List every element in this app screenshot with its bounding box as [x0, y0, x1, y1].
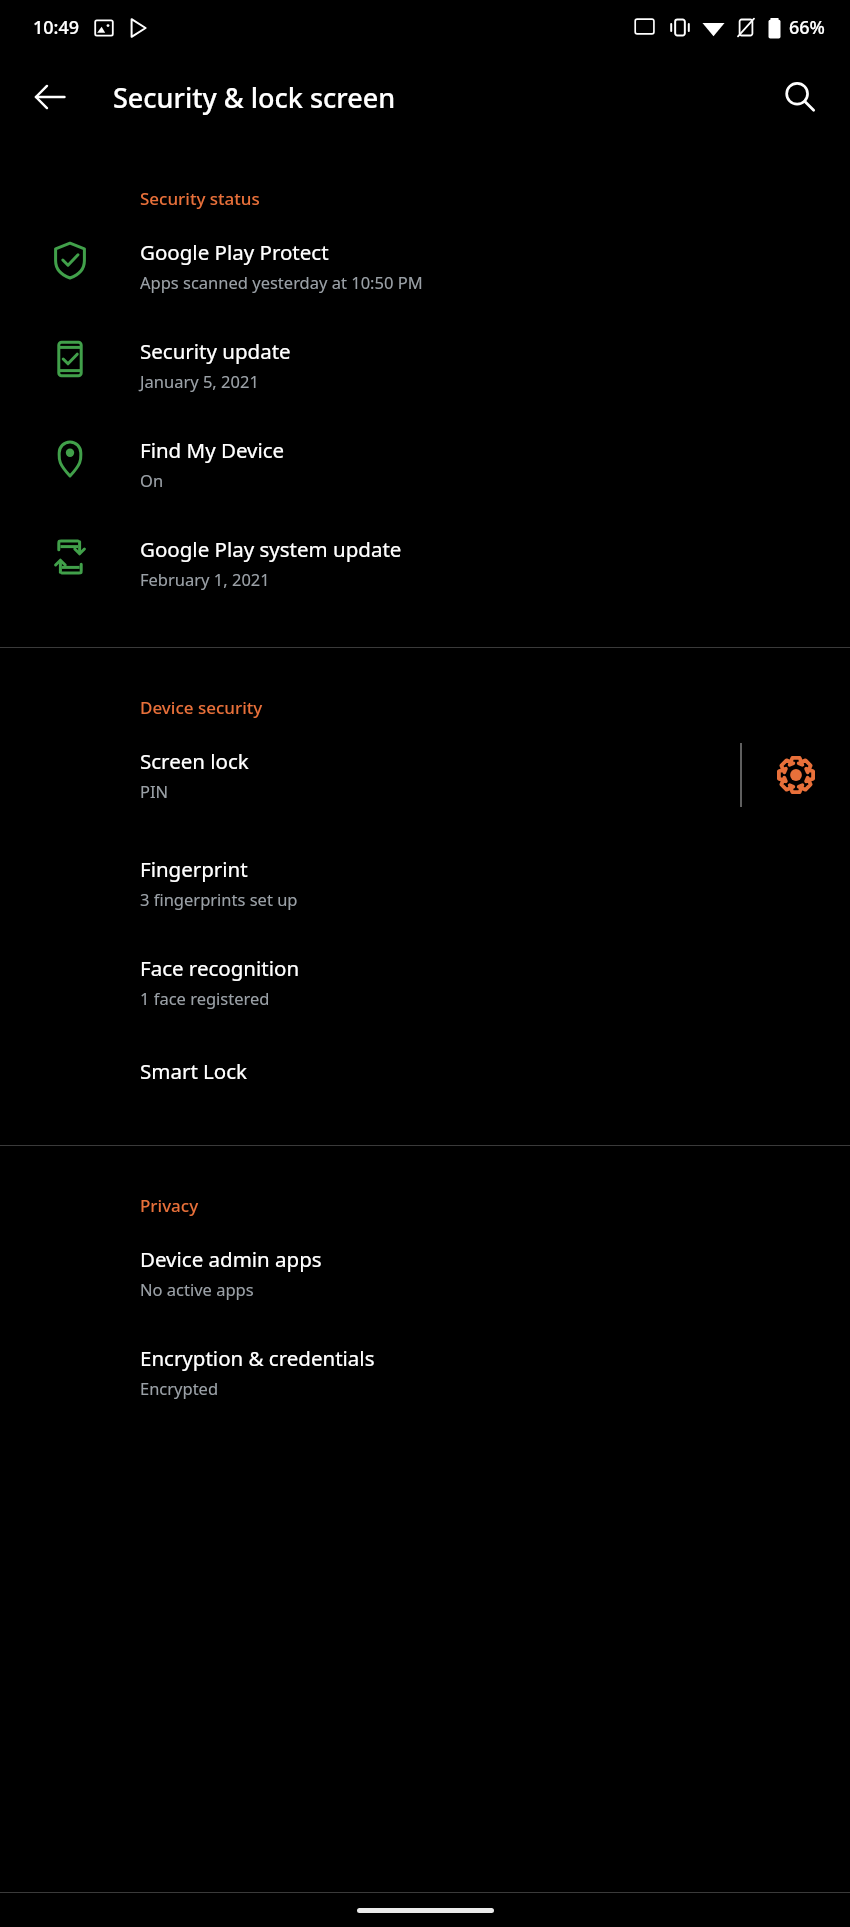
button[interactable]: Search	[772, 69, 828, 125]
staticText: Device security	[140, 696, 263, 719]
staticText: 1 face registered	[140, 987, 270, 1009]
staticText: 66%	[789, 15, 825, 40]
staticText: Encryption & credentials	[140, 1344, 375, 1372]
button[interactable]: Google Play system update	[0, 491, 850, 590]
staticText: 3 fingerprints set up	[140, 888, 298, 910]
button[interactable]: Screen lock	[0, 747, 850, 811]
staticText: 10:49	[33, 15, 80, 40]
staticText: Security status	[140, 187, 260, 210]
staticText: February 1, 2021	[140, 568, 270, 590]
staticText: Google Play Protect	[140, 238, 329, 266]
staticText: Fingerprint	[140, 855, 248, 883]
staticText: Device admin apps	[140, 1245, 322, 1273]
staticText: Face recognition	[140, 954, 300, 982]
staticText: Encrypted	[140, 1377, 219, 1399]
button[interactable]: Screen lock settings	[742, 743, 850, 807]
staticText: Apps scanned yesterday at 10:50 PM	[140, 271, 423, 293]
button[interactable]: Encryption & credentials	[0, 1300, 850, 1399]
button[interactable]: Find My Device	[0, 392, 850, 491]
staticText: No active apps	[140, 1278, 254, 1300]
staticText: January 5, 2021	[140, 370, 259, 392]
staticText: Screen lock	[140, 747, 249, 775]
button[interactable]: Face recognition	[0, 910, 850, 1009]
button[interactable]: Security update	[0, 293, 850, 392]
staticText: Google Play system update	[140, 535, 402, 563]
button[interactable]: Fingerprint	[0, 811, 850, 910]
staticText: Security & lock screen	[113, 79, 396, 116]
staticText: On	[140, 469, 164, 491]
button[interactable]: Back	[20, 67, 80, 127]
button[interactable]: Device admin apps	[0, 1245, 850, 1300]
button[interactable]: Smart Lock	[0, 1009, 850, 1085]
staticText: Smart Lock	[140, 1057, 248, 1085]
staticText: Security update	[140, 337, 291, 365]
staticText: Find My Device	[140, 436, 285, 464]
button[interactable]: Google Play Protect	[0, 238, 850, 293]
staticText: PIN	[140, 780, 169, 802]
staticText: Privacy	[140, 1194, 199, 1217]
